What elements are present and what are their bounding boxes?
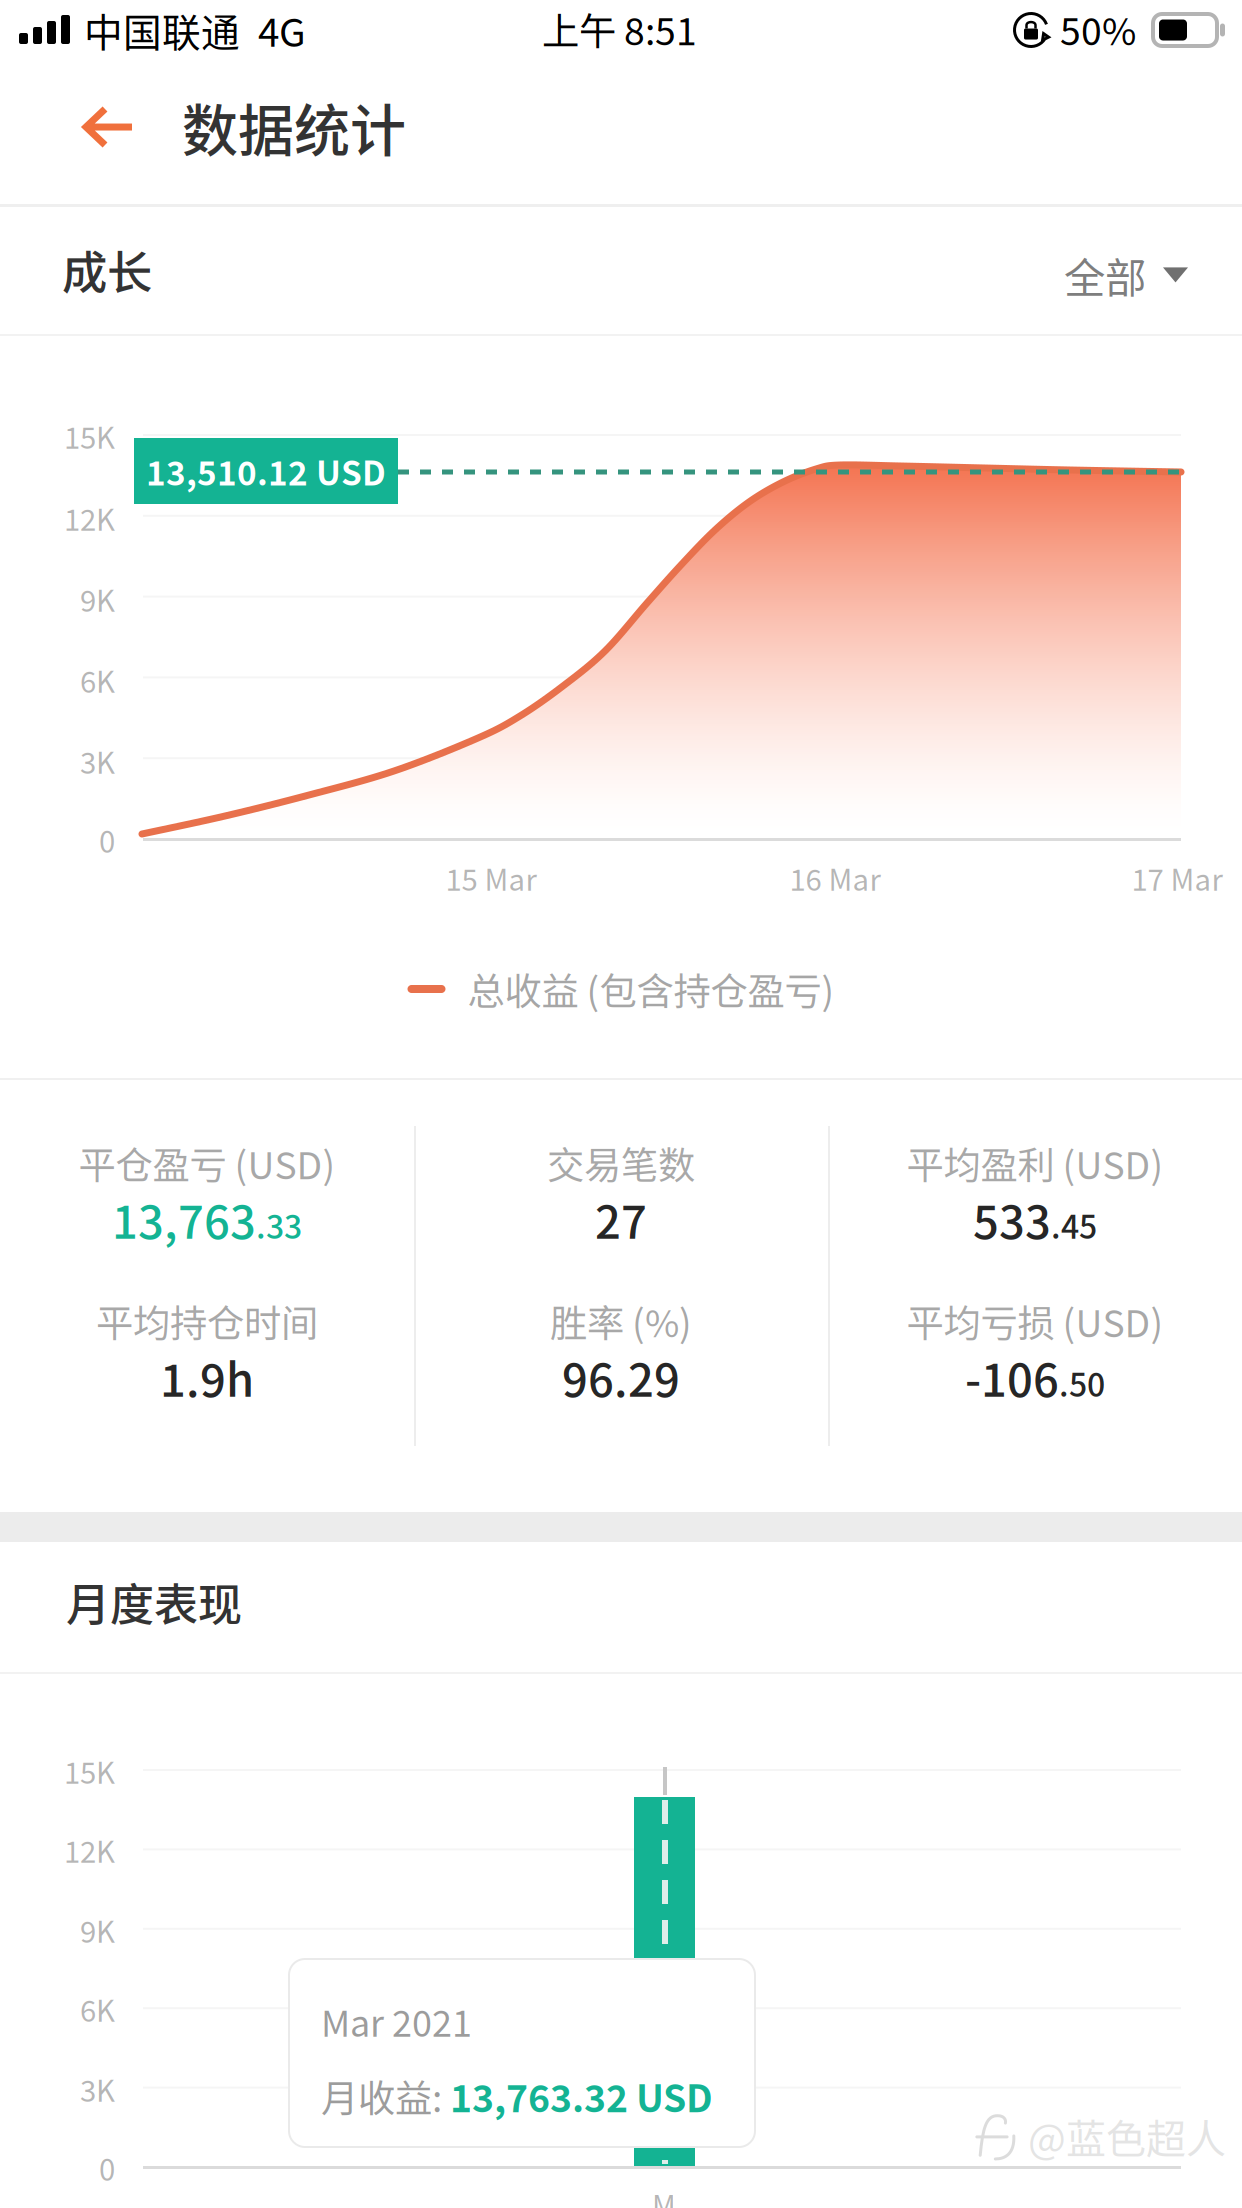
staticText: 17 Mar <box>1131 857 1222 899</box>
staticText: 16 Mar <box>789 857 880 899</box>
button[interactable]: Back <box>46 62 170 192</box>
staticText: 中国联通 4G <box>84 2 306 58</box>
staticText: .50 <box>1059 1360 1105 1406</box>
staticText: 13,763 <box>112 1186 256 1252</box>
staticText: 50% <box>1060 2 1136 56</box>
staticText: 15 Mar <box>445 857 536 899</box>
staticText: 胜率 (%) <box>550 1294 692 1348</box>
staticText: 成长 <box>62 237 152 303</box>
staticText: 27 <box>595 1186 647 1252</box>
staticText: .45 <box>1051 1202 1097 1248</box>
staticText: .33 <box>256 1202 302 1248</box>
staticText: M <box>652 2183 676 2208</box>
staticText: 12K <box>64 497 115 539</box>
staticText: Mar 2021 <box>321 1995 472 2047</box>
staticText: 平均亏损 (USD) <box>906 1294 1163 1348</box>
staticText: 13,510.12 USD <box>146 447 386 495</box>
staticText: 月度表现 <box>66 1570 242 1634</box>
staticText: 15K <box>64 415 115 457</box>
staticText: 上午 8:51 <box>542 2 697 56</box>
staticText: 13,763.32 USD <box>450 2069 713 2123</box>
staticText: 总收益 (包含持仓盈亏) <box>467 962 834 1016</box>
staticText: 533 <box>973 1186 1051 1252</box>
staticText: 96.29 <box>562 1344 680 1410</box>
staticText: 全部 <box>1064 245 1146 305</box>
staticText: @蓝色超人 <box>1028 2107 1226 2165</box>
staticText: 1.9h <box>160 1344 254 1410</box>
staticText: 0 <box>99 2147 115 2189</box>
staticText: 平均持仓时间 <box>96 1294 318 1348</box>
staticText: -106 <box>965 1344 1059 1410</box>
staticText: 3K <box>80 740 115 782</box>
staticText: 3K <box>80 2068 115 2110</box>
staticText: 交易笔数 <box>547 1136 695 1190</box>
staticText: 15K <box>64 1750 115 1792</box>
staticText: 12K <box>64 1829 115 1871</box>
button[interactable]: 全部 <box>1050 219 1202 331</box>
staticText: 月收益: <box>321 2069 450 2123</box>
staticText: 平仓盈亏 (USD) <box>78 1136 335 1190</box>
staticText: 平均盈利 (USD) <box>906 1136 1163 1190</box>
staticText: 0 <box>99 819 115 861</box>
staticText: 数据统计 <box>182 86 406 167</box>
staticText: 6K <box>80 659 115 701</box>
staticText: 6K <box>80 1988 115 2030</box>
staticText: 9K <box>80 578 115 620</box>
staticText: 9K <box>80 1909 115 1951</box>
